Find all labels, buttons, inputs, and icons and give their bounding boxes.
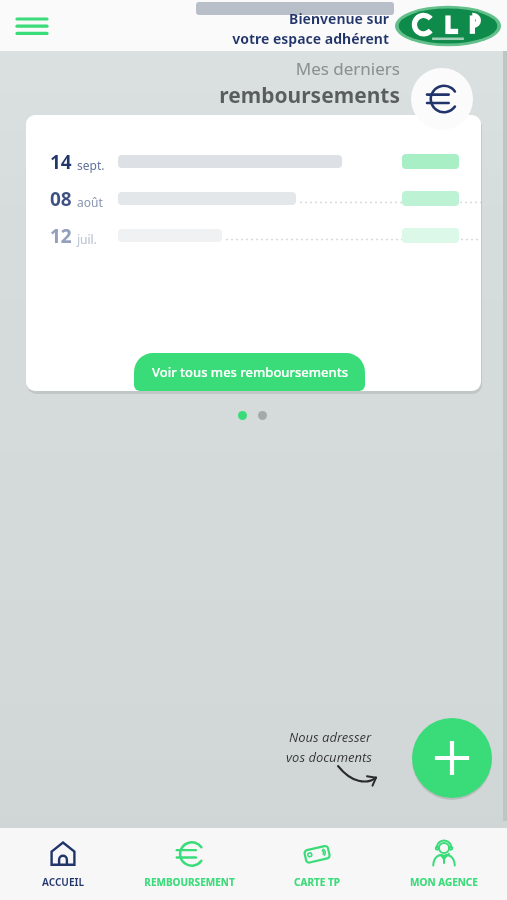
button[interactable]: Page 2: [258, 411, 267, 420]
button[interactable]: CLP: [395, 3, 501, 49]
button[interactable]: MON AGENCE: [380, 828, 507, 900]
button[interactable]: REMBOURSEMENT: [126, 828, 253, 900]
staticText: Bienvenue sur: [289, 9, 389, 28]
staticText: 14: [50, 149, 72, 175]
staticText: 12: [50, 223, 72, 249]
staticText: ACCUEIL: [42, 875, 84, 889]
staticText: Mes derniers: [295, 57, 400, 80]
staticText: REMBOURSEMENT: [144, 875, 235, 889]
staticText: Voir tous mes remboursements: [152, 363, 348, 381]
staticText: août: [77, 194, 103, 210]
staticText: juil.: [77, 231, 97, 247]
button[interactable]: Remboursements: [411, 68, 473, 130]
button[interactable]: Ajouter un document: [412, 718, 492, 798]
staticText: MON AGENCE: [410, 875, 478, 889]
staticText: sept.: [77, 157, 105, 173]
button[interactable]: ACCUEIL: [0, 828, 126, 900]
button[interactable]: Menu: [10, 4, 54, 48]
staticText: 08: [50, 186, 72, 212]
staticText: vos documents: [286, 748, 372, 766]
button[interactable]: 14: [26, 115, 481, 391]
button[interactable]: Page 1: [238, 411, 247, 420]
staticText: Nous adresser: [289, 728, 372, 746]
button[interactable]: Voir tous mes remboursements: [134, 353, 365, 391]
staticText: remboursements: [219, 81, 400, 110]
staticText: votre espace adhérent: [232, 29, 389, 48]
button[interactable]: CARTE TP: [253, 828, 380, 900]
staticText: CARTE TP: [294, 875, 340, 889]
